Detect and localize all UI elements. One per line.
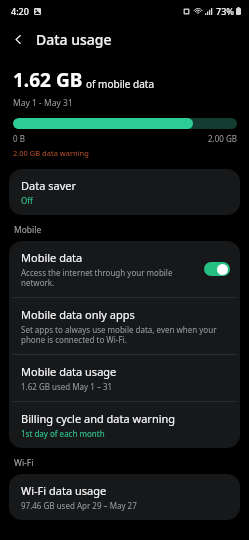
staticText: Data usage: [36, 30, 112, 49]
staticText: 1.62 GB: [13, 67, 83, 93]
staticText: 73%: [216, 5, 234, 17]
button[interactable]: Data saver: [9, 169, 240, 215]
button[interactable]: Mobile data usage: [9, 355, 240, 401]
staticText: 4:20: [11, 5, 29, 17]
staticText: Billing cycle and data warning: [21, 411, 176, 426]
button[interactable]: Mobile data only apps: [9, 298, 240, 354]
button[interactable]: Mobile data toggle: [204, 262, 230, 276]
staticText: Access the internet through your mobile …: [21, 267, 198, 288]
staticText: Mobile data: [21, 250, 83, 265]
staticText: Mobile data usage: [21, 364, 117, 379]
staticText: Set apps to always use mobile data, even…: [21, 324, 230, 345]
staticText: 0 B: [13, 133, 25, 144]
staticText: 1.62 GB used May 1 – 31: [21, 381, 113, 392]
button[interactable]: Wi-Fi data usage: [9, 474, 240, 520]
staticText: Off: [21, 195, 33, 206]
staticText: Wi-Fi data usage: [21, 483, 107, 498]
staticText: 2.00 GB: [208, 133, 237, 144]
staticText: Mobile data only apps: [21, 307, 135, 322]
staticText: 97.46 GB used Apr 29 – May 27: [21, 500, 137, 511]
staticText: 2.00 GB data warning: [13, 148, 89, 158]
staticText: Mobile: [14, 224, 42, 236]
staticText: Data saver: [21, 178, 76, 193]
staticText: 1st day of each month: [21, 428, 105, 439]
staticText: Wi-Fi: [14, 457, 34, 469]
button[interactable]: Back: [5, 26, 31, 52]
button[interactable]: Mobile data: [9, 241, 240, 297]
staticText: of mobile data: [86, 77, 155, 91]
staticText: May 1 - May 31: [13, 97, 73, 109]
button[interactable]: Billing cycle and data warning: [9, 402, 240, 448]
